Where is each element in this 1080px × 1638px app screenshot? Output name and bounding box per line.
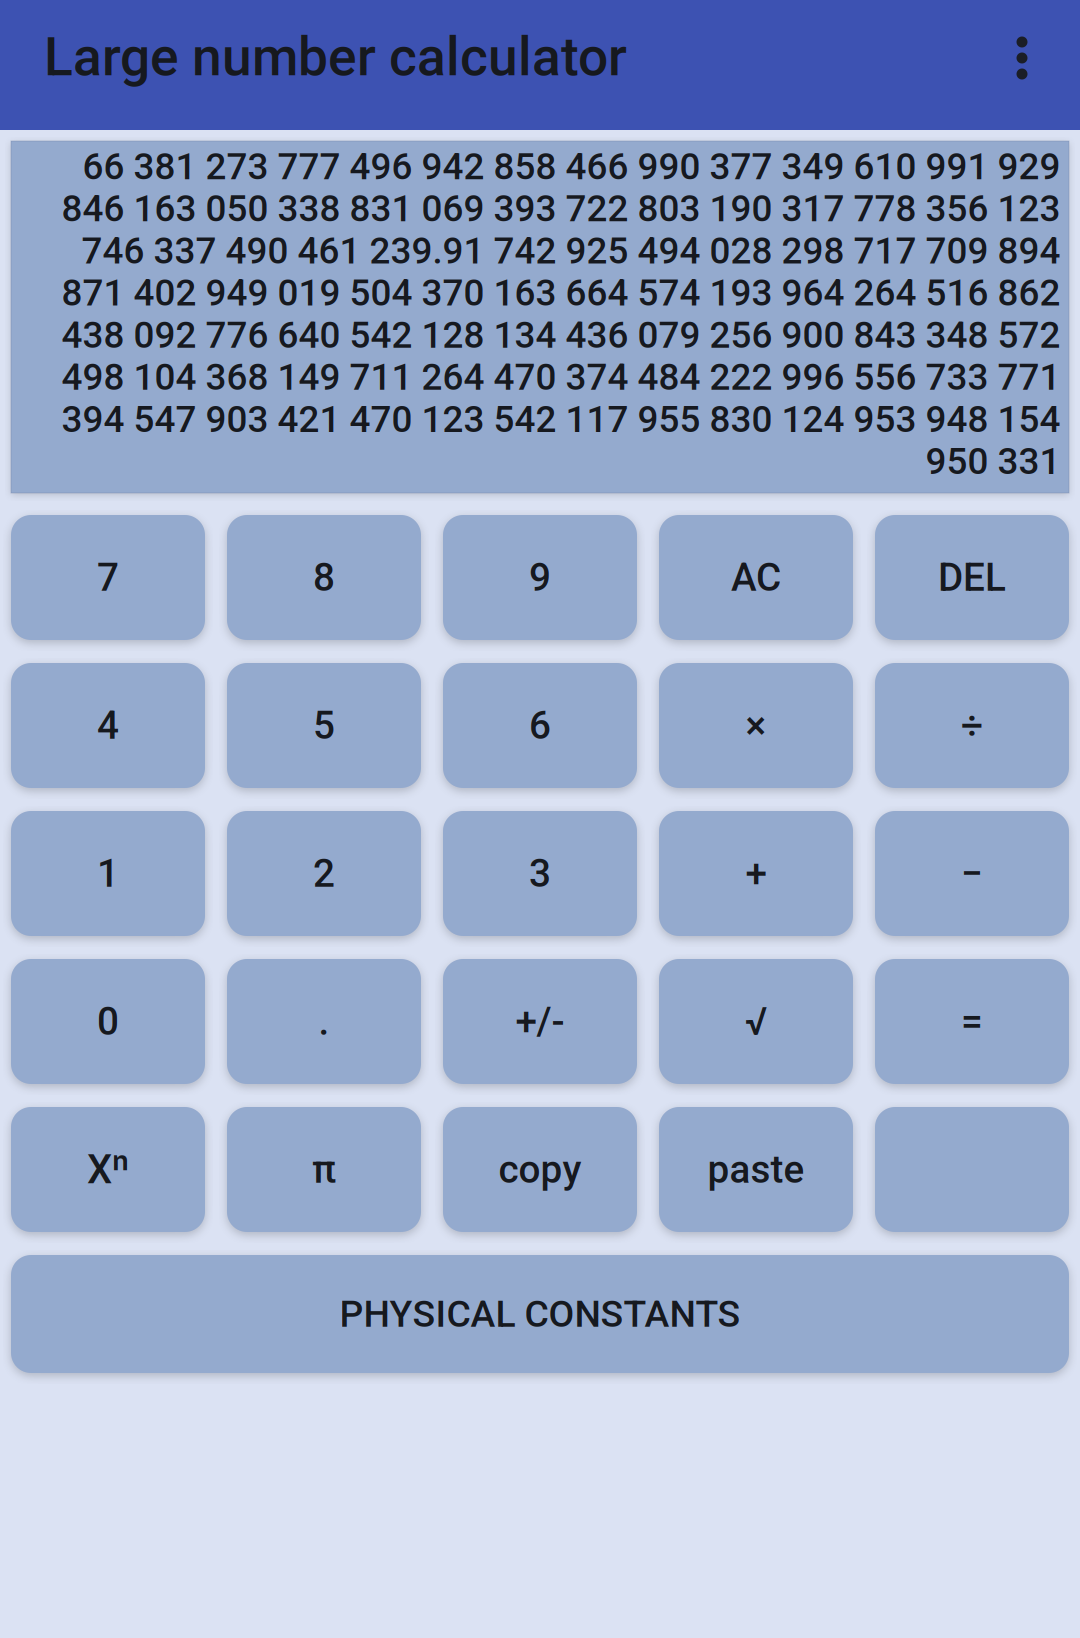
staticText: 3 — [529, 851, 551, 896]
button[interactable]: +/- — [443, 959, 637, 1084]
button[interactable]: AC — [659, 515, 853, 640]
staticText: × — [745, 703, 766, 748]
button[interactable]: Blank key — [875, 1107, 1069, 1232]
staticText: 9 — [529, 555, 551, 600]
staticText: DEL — [938, 555, 1006, 600]
button[interactable]: 7 — [11, 515, 205, 640]
button[interactable]: copy — [443, 1107, 637, 1232]
staticText: copy — [498, 1147, 581, 1192]
button[interactable]: √ — [659, 959, 853, 1084]
staticText: + — [745, 851, 766, 896]
button[interactable]: + — [659, 811, 853, 936]
button[interactable]: 6 — [443, 663, 637, 788]
staticText: 4 — [97, 703, 119, 748]
staticText: = — [961, 999, 983, 1044]
button[interactable]: × — [659, 663, 853, 788]
button[interactable]: PHYSICAL CONSTANTS — [11, 1255, 1069, 1373]
button[interactable]: 4 — [11, 663, 205, 788]
staticText: 2 — [313, 851, 335, 896]
button[interactable]: 0 — [11, 959, 205, 1084]
button[interactable]: π — [227, 1107, 421, 1232]
staticText: 5 — [313, 703, 335, 748]
staticText: 7 — [97, 555, 119, 600]
staticText: +/- — [515, 999, 564, 1044]
button[interactable]: DEL — [875, 515, 1069, 640]
button[interactable]: 9 — [443, 515, 637, 640]
button[interactable]: = — [875, 959, 1069, 1084]
staticText: π — [312, 1147, 336, 1192]
staticText: PHYSICAL CONSTANTS — [339, 1292, 740, 1336]
staticText: 0 — [97, 999, 119, 1044]
staticText: paste — [707, 1147, 804, 1192]
button[interactable]: 8 — [227, 515, 421, 640]
button[interactable]: 1 — [11, 811, 205, 936]
button[interactable]: More options — [964, 0, 1080, 137]
staticText: 6 — [529, 703, 551, 748]
button[interactable]: − — [875, 811, 1069, 936]
button[interactable]: ÷ — [875, 663, 1069, 788]
button[interactable]: paste — [659, 1107, 853, 1232]
staticText: − — [961, 851, 983, 896]
staticText: 8 — [313, 555, 335, 600]
button[interactable]: Xⁿ — [11, 1107, 205, 1232]
staticText: Large number calculator — [44, 26, 627, 88]
staticText: √ — [745, 999, 767, 1044]
button[interactable]: 5 — [227, 663, 421, 788]
staticText: Xⁿ — [87, 1146, 129, 1193]
button[interactable]: . — [227, 959, 421, 1084]
staticText: . — [318, 999, 329, 1044]
staticText: ÷ — [961, 703, 983, 748]
staticText: AC — [731, 555, 781, 600]
button[interactable]: 2 — [227, 811, 421, 936]
button[interactable]: 3 — [443, 811, 637, 936]
staticText: 1 — [97, 851, 119, 896]
staticText: 66 381 273 777 496 942 858 466 990 377 3… — [61, 145, 1060, 483]
